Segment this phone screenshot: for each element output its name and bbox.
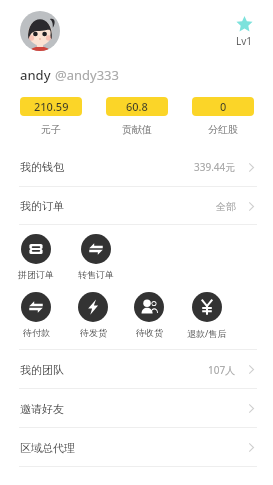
other: 待收货 — [134, 292, 164, 322]
staticText: 339.44元 — [194, 160, 236, 174]
staticText: 区域总代理 — [20, 441, 75, 455]
staticText: Lv1 — [236, 34, 253, 48]
staticText: 转售订单 — [78, 269, 114, 280]
button[interactable]: 区域总代理 — [0, 428, 273, 467]
staticText: 我的钱包 — [20, 160, 64, 174]
button[interactable]: 待付款 — [8, 292, 64, 338]
staticText: 0 — [220, 99, 227, 114]
staticText: 60.8 — [126, 99, 148, 114]
button[interactable]: 待发货 — [65, 292, 121, 338]
button[interactable]: Profile avatar — [20, 11, 60, 51]
staticText: 210.59 — [34, 99, 69, 114]
staticText: 我的团队 — [20, 363, 64, 377]
staticText: 退款/售后 — [187, 327, 227, 339]
button[interactable]: 邀请好友 — [0, 389, 273, 428]
other: 转售订单 — [81, 234, 111, 264]
staticText: 待付款 — [23, 327, 50, 338]
staticText: 待收货 — [136, 327, 163, 338]
button[interactable]: 拼团订单 — [8, 234, 64, 280]
button[interactable]: 我的团队 — [0, 350, 273, 389]
staticText: 107人 — [208, 363, 236, 377]
staticText: 待发货 — [80, 327, 107, 338]
staticText: 我的订单 — [20, 199, 64, 213]
button[interactable]: 60.8 — [106, 97, 168, 136]
staticText: 元子 — [41, 123, 61, 136]
staticText: 邀请好友 — [20, 402, 64, 416]
button[interactable]: 我的订单 — [0, 187, 273, 225]
button[interactable]: 转售订单 — [68, 234, 124, 280]
button[interactable]: 退款/售后 — [179, 292, 235, 339]
button[interactable]: Level 1 — [228, 16, 261, 48]
staticText: 分红股 — [208, 123, 238, 136]
staticText: 贡献值 — [122, 123, 152, 136]
button[interactable]: 210.59 — [20, 97, 82, 136]
staticText: 拼团订单 — [18, 269, 54, 280]
staticText: andy — [20, 66, 51, 84]
other: 拼团订单 — [21, 234, 51, 264]
other: 退款/售后 — [192, 292, 222, 322]
staticText: @andy333 — [55, 66, 119, 84]
other: 待付款 — [21, 292, 51, 322]
staticText: 全部 — [216, 200, 236, 213]
button[interactable]: 0 — [192, 97, 254, 136]
button[interactable]: 待收货 — [121, 292, 177, 338]
button[interactable]: 我的钱包 — [0, 147, 273, 187]
other: 待发货 — [78, 292, 108, 322]
